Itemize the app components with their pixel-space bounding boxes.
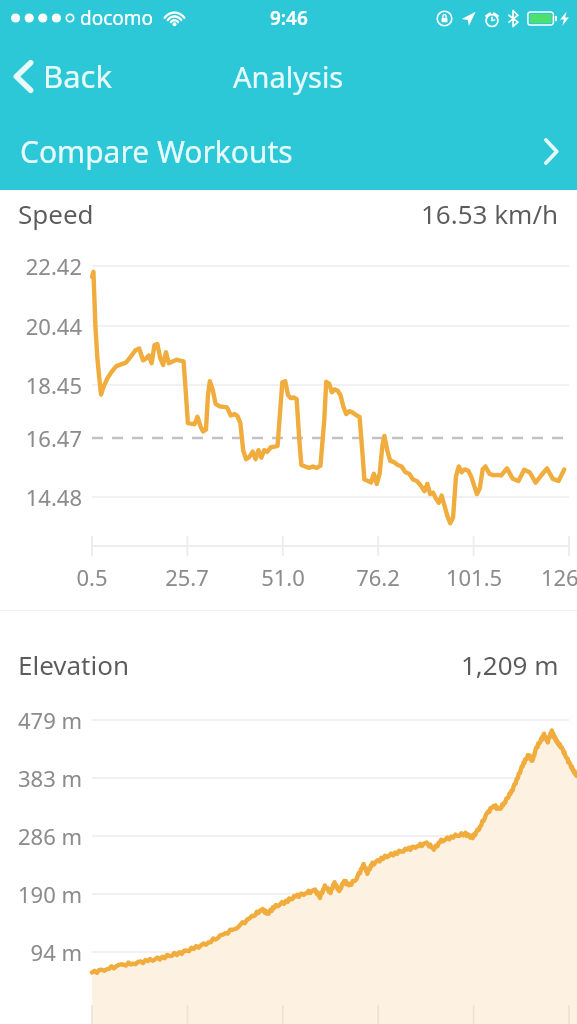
staticText: 383 m bbox=[0, 763, 82, 793]
staticText: docomo bbox=[80, 5, 154, 31]
staticText: 101.5 bbox=[419, 562, 529, 592]
staticText: 479 m bbox=[0, 705, 82, 735]
staticText: 1,209 m bbox=[461, 647, 559, 682]
staticText: 126.7 bbox=[514, 562, 577, 592]
staticText: 18.45 bbox=[0, 370, 82, 400]
staticText: 76.2 bbox=[323, 562, 433, 592]
staticText: 16.47 bbox=[0, 423, 82, 453]
staticText: 9:46 bbox=[270, 5, 308, 31]
staticText: 0.5 bbox=[37, 562, 147, 592]
staticText: 20.44 bbox=[0, 311, 82, 341]
staticText: Compare Workouts bbox=[20, 131, 293, 172]
other: Compare Workouts bbox=[543, 137, 559, 166]
staticText: 286 m bbox=[0, 821, 82, 851]
staticText: 14.48 bbox=[0, 482, 82, 512]
button[interactable]: Compare Workouts bbox=[0, 114, 577, 188]
staticText: 22.42 bbox=[0, 251, 82, 281]
staticText: Speed bbox=[18, 196, 94, 231]
staticText: Back bbox=[43, 55, 112, 97]
staticText: 51.0 bbox=[228, 562, 338, 592]
staticText: Elevation bbox=[18, 647, 129, 682]
staticText: 25.7 bbox=[132, 562, 242, 592]
staticText: 16.53 km/h bbox=[421, 196, 559, 231]
button[interactable]: Back bbox=[0, 43, 130, 109]
staticText: Analysis bbox=[233, 57, 344, 96]
staticText: 94 m bbox=[0, 937, 82, 967]
staticText: 190 m bbox=[0, 879, 82, 909]
